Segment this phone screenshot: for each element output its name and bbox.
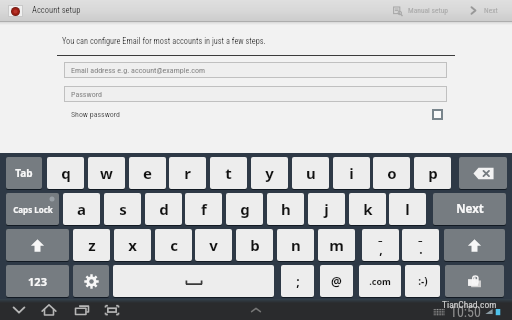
staticText: y (265, 163, 274, 183)
staticText: k (363, 199, 373, 219)
staticText: d (159, 199, 169, 219)
button[interactable]: i (333, 157, 370, 189)
button[interactable]: Tab (6, 157, 42, 189)
button[interactable]: Password (64, 86, 447, 102)
button[interactable]: r (169, 157, 206, 189)
staticText: Show password (71, 110, 121, 119)
button[interactable]: Show password (64, 106, 447, 123)
staticText: f (201, 199, 207, 219)
staticText: .com (369, 275, 391, 287)
staticText: Email address e.g. account@example.com (71, 66, 206, 75)
button[interactable]: Paste (445, 265, 504, 297)
staticText: c (170, 235, 178, 255)
button[interactable]: e (129, 157, 166, 189)
staticText: – (378, 234, 383, 246)
button[interactable]: Home (40, 299, 58, 320)
staticText: , (379, 241, 383, 257)
button[interactable]: y (251, 157, 288, 189)
button[interactable]: Settings (73, 265, 109, 297)
button[interactable]: q (47, 157, 84, 189)
button[interactable]: t (210, 157, 247, 189)
button[interactable]: Shift (6, 229, 69, 261)
button[interactable]: 123 (6, 265, 69, 297)
staticText: q (61, 163, 71, 183)
button[interactable]: n (277, 229, 314, 261)
button[interactable]: f (185, 193, 222, 225)
button[interactable]: :-) (405, 265, 440, 297)
staticText: Tab (15, 166, 33, 180)
staticText: z (88, 235, 96, 255)
staticText: u (306, 163, 316, 183)
staticText: h (281, 199, 291, 219)
button[interactable]: x (114, 229, 151, 261)
button[interactable]: h (267, 193, 304, 225)
staticText: p (428, 163, 438, 183)
staticText: Next (456, 201, 484, 217)
button[interactable]: Space (113, 265, 274, 297)
button[interactable]: j (308, 193, 345, 225)
staticText: n (291, 235, 301, 255)
staticText: g (240, 199, 250, 219)
staticText: w (100, 163, 113, 183)
staticText: :-) (418, 274, 428, 288)
button[interactable]: Status (433, 304, 501, 319)
staticText: Manual setup (408, 6, 449, 15)
button[interactable]: Next (433, 193, 506, 225)
staticText: e (143, 163, 152, 183)
staticText: m (329, 235, 344, 255)
button[interactable]: Expand (246, 300, 266, 320)
button[interactable]: a (63, 193, 100, 225)
staticText: t (225, 163, 232, 183)
staticText: – (418, 234, 423, 246)
staticText: s (119, 199, 127, 219)
button[interactable]: @ (320, 265, 353, 297)
staticText: a (77, 199, 86, 219)
button[interactable]: App icon (8, 5, 23, 17)
staticText: Password (71, 90, 103, 99)
button[interactable]: d (145, 193, 182, 225)
button[interactable]: Email address e.g. account@example.com (64, 62, 447, 78)
staticText: ; (296, 273, 300, 289)
button[interactable]: c (155, 229, 192, 261)
button[interactable]: m (318, 229, 355, 261)
button[interactable]: .com (359, 265, 401, 297)
staticText: x (128, 235, 137, 255)
button[interactable]: ; (281, 265, 314, 297)
button[interactable]: w (88, 157, 125, 189)
button[interactable]: Backspace (459, 157, 507, 189)
button[interactable]: b (236, 229, 273, 261)
button[interactable]: Show password checkbox (432, 109, 443, 120)
staticText: 123 (28, 274, 47, 289)
button[interactable]: . (402, 229, 439, 261)
staticText: . (419, 241, 423, 257)
button[interactable]: k (349, 193, 386, 225)
button[interactable]: Back (10, 299, 28, 320)
button[interactable]: Fullscreen (103, 299, 121, 320)
staticText: i (349, 163, 354, 183)
button[interactable]: g (226, 193, 263, 225)
button[interactable]: p (414, 157, 451, 189)
staticText: TianChad.com (442, 299, 497, 310)
staticText: 10:50 (450, 304, 481, 319)
button[interactable]: Recents (73, 299, 91, 320)
button[interactable]: z (73, 229, 110, 261)
button[interactable]: o (373, 157, 410, 189)
button[interactable]: s (104, 193, 141, 225)
staticText: v (209, 235, 218, 255)
button[interactable]: l (389, 193, 426, 225)
button[interactable]: , (362, 229, 399, 261)
staticText: Next (484, 6, 498, 15)
staticText: l (405, 199, 410, 219)
button[interactable]: Caps Lock (6, 193, 59, 225)
staticText: j (324, 199, 329, 219)
button[interactable]: Shift (444, 229, 505, 261)
staticText: o (387, 163, 397, 183)
staticText: r (184, 163, 191, 183)
button[interactable]: v (195, 229, 232, 261)
staticText: @ (331, 273, 342, 289)
button[interactable]: u (292, 157, 329, 189)
staticText: You can configure Email for most account… (62, 36, 266, 46)
staticText: Caps Lock (13, 204, 53, 215)
button[interactable]: Manual setup (391, 2, 451, 19)
button[interactable]: Next (466, 2, 500, 19)
